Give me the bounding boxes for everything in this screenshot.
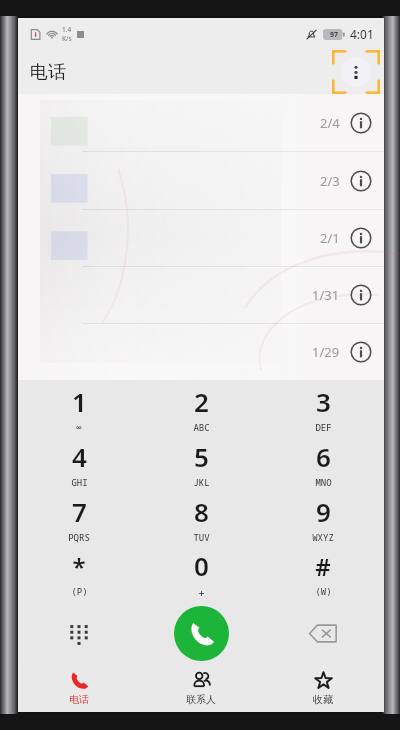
button[interactable]: 1 xyxy=(18,380,140,436)
staticText: 电话 xyxy=(69,693,89,706)
button[interactable]: 1/29 xyxy=(18,324,384,380)
staticText: 1/29 xyxy=(312,343,340,361)
button[interactable]: Call details xyxy=(350,284,372,306)
staticText: * xyxy=(72,550,86,583)
button[interactable]: * xyxy=(18,546,140,601)
staticText: ABC xyxy=(193,421,210,433)
staticText: DEF xyxy=(315,421,332,433)
staticText: (W) xyxy=(315,585,332,597)
staticText: 联系人 xyxy=(186,693,216,706)
button[interactable]: 2/3 xyxy=(18,152,384,209)
staticText: MNO xyxy=(315,476,332,488)
staticText: 1.4 xyxy=(62,25,72,34)
staticText: 5 xyxy=(194,439,209,474)
button[interactable]: # xyxy=(262,546,384,601)
button[interactable]: 9 xyxy=(262,491,384,546)
staticText: + xyxy=(198,585,205,600)
button[interactable]: Call xyxy=(174,606,229,661)
staticText: 0 xyxy=(194,548,209,583)
button[interactable]: 6 xyxy=(262,436,384,491)
button[interactable]: Call details xyxy=(350,341,372,363)
staticText: K/s xyxy=(62,34,72,43)
staticText: 4:01 xyxy=(350,26,374,42)
button[interactable]: Backspace xyxy=(262,601,384,665)
button[interactable]: More options xyxy=(341,57,371,87)
staticText: # xyxy=(315,550,331,583)
staticText: GHI xyxy=(71,476,88,488)
button[interactable]: 2/1 xyxy=(18,210,384,266)
button[interactable]: 电话 xyxy=(18,665,140,712)
staticText: 电话 xyxy=(30,61,66,84)
staticText: 6 xyxy=(316,439,331,474)
staticText: JKL xyxy=(193,476,210,488)
button[interactable]: 0 xyxy=(140,546,262,601)
button[interactable]: 3 xyxy=(262,380,384,436)
staticText: 97 xyxy=(330,30,339,40)
button[interactable]: 2/4 xyxy=(18,94,384,151)
button[interactable]: 7 xyxy=(18,491,140,546)
staticText: 1 xyxy=(72,384,87,419)
button[interactable]: 2 xyxy=(140,380,262,436)
button[interactable]: Call details xyxy=(350,170,372,192)
button[interactable]: 联系人 xyxy=(140,665,262,712)
staticText: WXYZ xyxy=(312,531,334,543)
staticText: 7 xyxy=(72,494,87,529)
button[interactable]: 8 xyxy=(140,491,262,546)
button[interactable]: 5 xyxy=(140,436,262,491)
button[interactable]: Call details xyxy=(350,112,372,134)
staticText: 3 xyxy=(316,384,331,419)
staticText: 9 xyxy=(316,494,331,529)
staticText: 收藏 xyxy=(313,693,333,706)
staticText: 8 xyxy=(194,494,209,529)
staticText: 2 xyxy=(194,384,209,419)
staticText: 2/3 xyxy=(320,172,340,190)
button[interactable]: 4 xyxy=(18,436,140,491)
staticText: TUV xyxy=(193,531,210,543)
button[interactable]: Call details xyxy=(350,227,372,249)
staticText: 1/31 xyxy=(312,286,340,304)
staticText: 2/4 xyxy=(320,114,340,132)
button[interactable]: Hide keypad xyxy=(18,601,140,665)
staticText: ∞ xyxy=(76,421,82,433)
staticText: 4 xyxy=(72,439,87,474)
staticText: 2/1 xyxy=(320,229,340,247)
staticText: PQRS xyxy=(68,531,90,543)
button[interactable]: 收藏 xyxy=(262,665,384,712)
button[interactable]: 1/31 xyxy=(18,267,384,323)
staticText: (P) xyxy=(71,585,88,597)
